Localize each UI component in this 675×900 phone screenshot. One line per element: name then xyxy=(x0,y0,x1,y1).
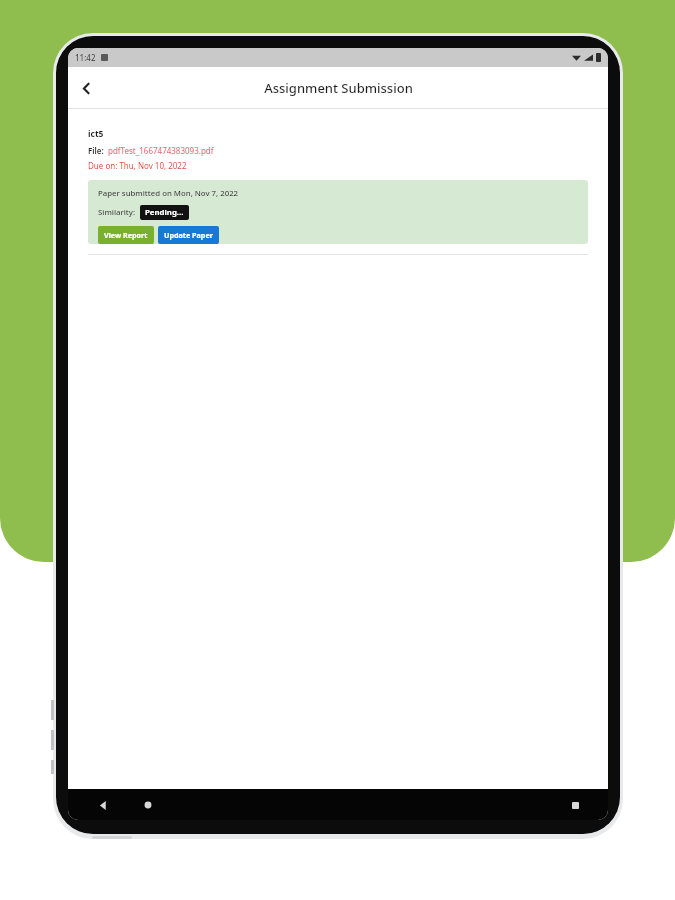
button[interactable]: Update Paper xyxy=(158,226,219,244)
button[interactable]: Home xyxy=(135,792,161,818)
staticText: File: xyxy=(88,145,104,156)
staticText: Update Paper xyxy=(164,230,213,240)
staticText: Paper submitted on Mon, Nov 7, 2022 xyxy=(98,188,239,199)
staticText: Assignment Submission xyxy=(264,79,413,97)
staticText: View Report xyxy=(104,230,148,240)
button[interactable]: pdfTest_1667474383093.pdf xyxy=(108,145,214,156)
button[interactable]: Recent apps xyxy=(562,792,588,818)
button[interactable]: View Report xyxy=(98,226,154,244)
staticText: Pending... xyxy=(145,207,184,218)
staticText: Similarity: xyxy=(98,207,136,218)
staticText: ict5 xyxy=(88,128,104,140)
button[interactable]: Back xyxy=(90,792,116,818)
button[interactable]: Back xyxy=(68,70,104,106)
staticText: pdfTest_1667474383093.pdf xyxy=(108,145,214,156)
staticText: Due on: Thu, Nov 10, 2022 xyxy=(88,160,187,171)
staticText: 11:42 xyxy=(75,52,96,63)
